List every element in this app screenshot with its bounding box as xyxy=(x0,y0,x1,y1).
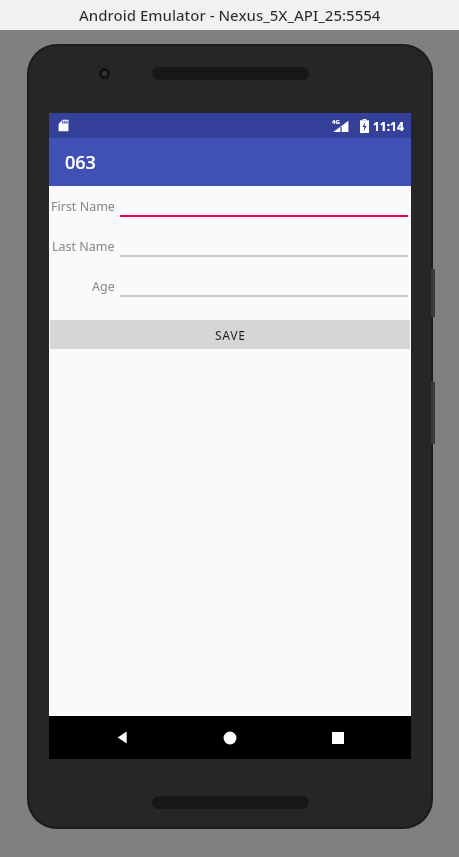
staticText: Android Emulator - Nexus_5X_API_25:5554 xyxy=(79,5,381,25)
button[interactable]: Age xyxy=(49,266,411,306)
staticText: SAVE xyxy=(215,327,246,343)
staticText: First Name xyxy=(51,198,115,215)
staticText: 063 xyxy=(65,150,96,175)
staticText: 4G xyxy=(332,118,340,126)
button[interactable]: Back xyxy=(87,716,157,759)
button[interactable]: Home xyxy=(195,716,265,759)
staticText: Age xyxy=(92,278,115,295)
button[interactable]: Last Name xyxy=(49,226,411,266)
button[interactable]: SAVE xyxy=(50,320,410,349)
staticText: 11:14 xyxy=(373,118,404,134)
button[interactable]: First Name xyxy=(49,186,411,226)
button[interactable]: Recent apps xyxy=(303,716,373,759)
staticText: Last Name xyxy=(52,238,115,255)
